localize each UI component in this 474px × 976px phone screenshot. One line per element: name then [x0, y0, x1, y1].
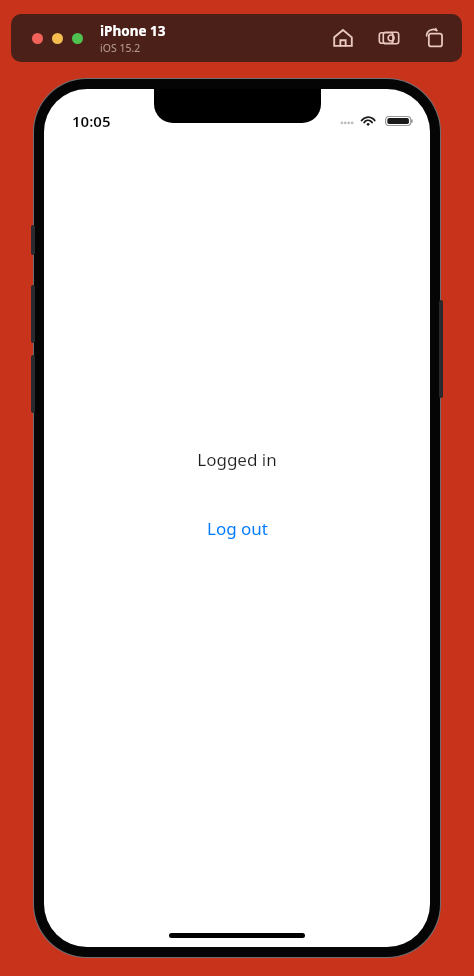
- staticText: Logged in: [197, 448, 277, 471]
- button[interactable]: Rotate: [422, 25, 448, 51]
- staticText: iPhone 13: [100, 22, 166, 40]
- button[interactable]: Close: [32, 33, 43, 44]
- button[interactable]: Log out: [199, 513, 276, 544]
- staticText: 10:05: [72, 111, 111, 131]
- staticText: Log out: [207, 517, 268, 540]
- button[interactable]: Minimize: [52, 33, 63, 44]
- button[interactable]: Zoom: [72, 33, 83, 44]
- button[interactable]: Home: [330, 25, 356, 51]
- button[interactable]: Screenshot: [376, 25, 402, 51]
- staticText: iOS 15.2: [100, 41, 141, 55]
